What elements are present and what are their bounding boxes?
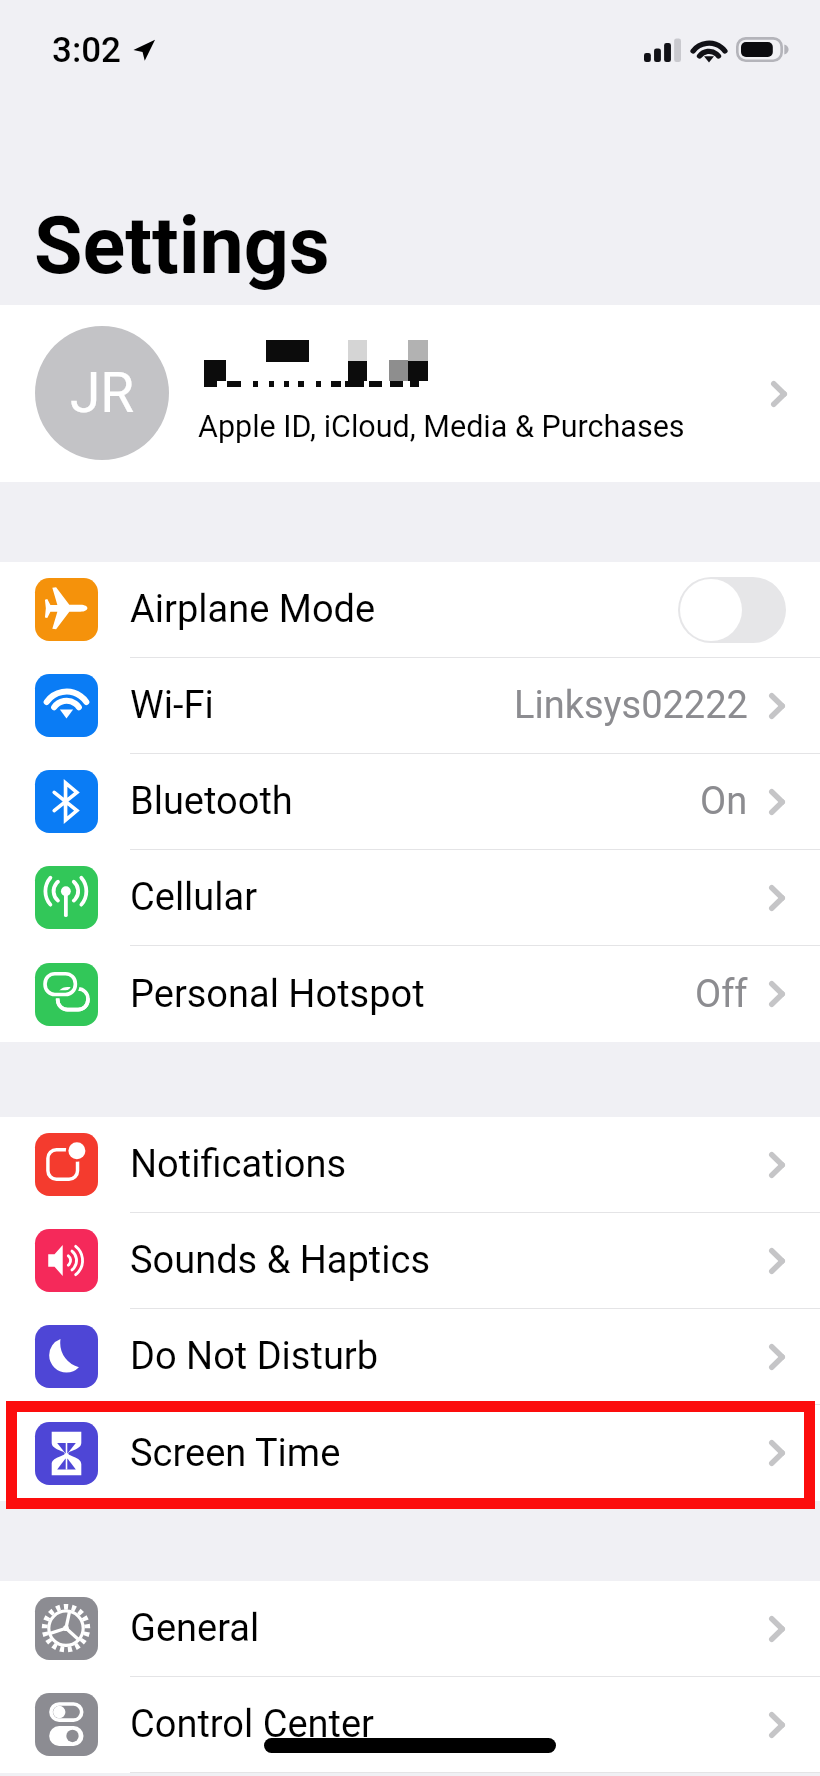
staticText: Settings [34,200,330,293]
staticText: Notifications [130,1142,347,1187]
staticText: Airplane Mode [130,587,376,632]
staticText: Do Not Disturb [130,1334,379,1379]
button[interactable]: Cellular [0,850,820,945]
button[interactable]: Airplane Mode [0,562,820,657]
button[interactable]: Notifications [0,1117,820,1212]
button[interactable]: Wi-Fi [0,658,820,753]
button[interactable]: Sounds & Haptics [0,1213,820,1308]
staticText: Wi-Fi [130,683,214,728]
button[interactable]: JR [0,305,820,482]
button[interactable]: Personal Hotspot [0,946,820,1042]
staticText: On [700,779,748,824]
button[interactable]: Screen Time [0,1405,820,1501]
button[interactable]: Control Center [0,1677,820,1772]
staticText: 3:02 [52,30,121,71]
staticText: Sounds & Haptics [130,1238,430,1283]
staticText: Apple ID, iCloud, Media & Purchases [198,409,685,445]
staticText: Off [695,972,748,1017]
staticText: Screen Time [130,1431,341,1476]
staticText: JR [70,361,135,425]
staticText: General [130,1606,260,1651]
button[interactable]: Do Not Disturb [0,1309,820,1404]
button[interactable]: General [0,1581,820,1676]
staticText: Bluetooth [130,779,293,824]
button[interactable]: Bluetooth [0,754,820,849]
button[interactable]: Airplane Mode toggle [678,577,786,643]
staticText: Control Center [130,1702,374,1747]
staticText: Linksys02222 [514,683,748,728]
staticText: Cellular [130,875,258,920]
staticText: Personal Hotspot [130,972,425,1017]
